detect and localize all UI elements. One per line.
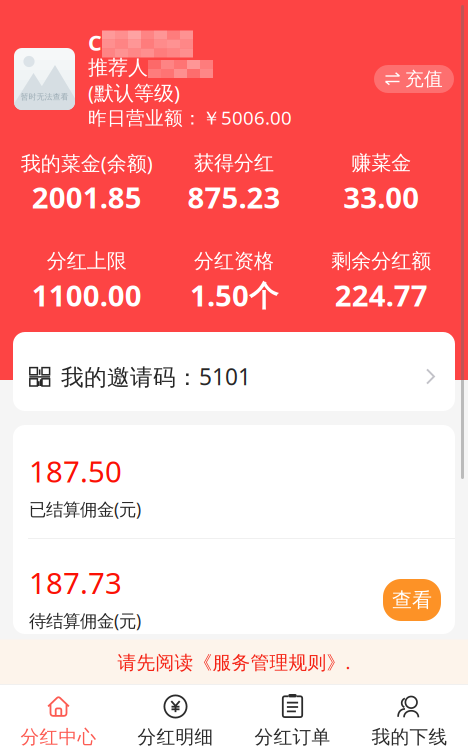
staticText: 分红明细: [137, 725, 213, 748]
button[interactable]: 分红明细: [117, 685, 234, 754]
staticText: 剩余分红额: [331, 249, 431, 273]
staticText: C: [88, 28, 102, 57]
staticText: 查看: [392, 588, 432, 612]
staticText: 已结算佣金(元): [29, 497, 141, 520]
staticText: 分红中心: [20, 725, 96, 748]
staticText: 分红上限: [47, 249, 127, 273]
button[interactable]: 分红订单: [234, 685, 351, 754]
staticText: 187.73: [29, 563, 122, 602]
button[interactable]: 我的下线: [351, 685, 468, 754]
staticText: 224.77: [335, 275, 428, 314]
button[interactable]: 分红中心: [0, 685, 117, 754]
staticText: 875.23: [187, 177, 280, 216]
staticText: 33.00: [343, 177, 419, 216]
staticText: 推荐人: [88, 55, 148, 80]
staticText: 获得分红: [194, 151, 274, 175]
staticText: 分红资格: [194, 249, 274, 273]
staticText: 暂时无法查看: [20, 92, 68, 102]
staticText: 待结算佣金(元): [29, 609, 141, 632]
staticText: 1.50个: [190, 275, 278, 314]
staticText: 赚菜金: [351, 151, 411, 175]
button[interactable]: 请先阅读《服务管理规则》.: [0, 639, 468, 684]
staticText: 充值: [405, 67, 443, 90]
staticText: 我的下线: [371, 725, 447, 748]
staticText: 187.50: [29, 451, 122, 490]
button[interactable]: 充值: [374, 65, 454, 93]
staticText: 1100.00: [32, 275, 142, 314]
staticText: 昨日营业额：￥5006.00: [88, 105, 292, 130]
staticText: 分红订单: [254, 725, 330, 748]
staticText: 2001.85: [32, 177, 142, 216]
staticText: 我的菜金(余额): [21, 150, 153, 176]
staticText: (默认等级): [88, 79, 180, 106]
button[interactable]: 查看: [383, 579, 441, 621]
button[interactable]: 我的邀请码：5101: [13, 332, 455, 411]
staticText: 我的邀请码：5101: [61, 361, 251, 391]
staticText: 请先阅读《服务管理规则》.: [117, 650, 350, 674]
